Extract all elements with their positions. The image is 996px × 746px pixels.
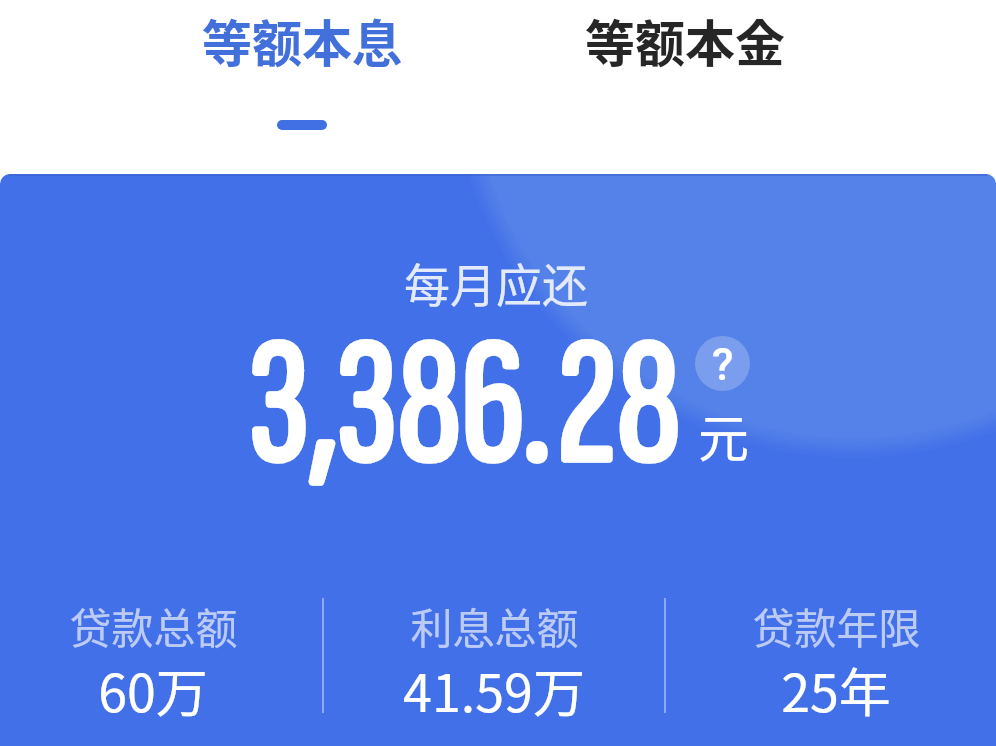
staticText: ? — [712, 339, 734, 391]
staticText: 41.59万 — [403, 652, 585, 727]
staticText: 等额本息 — [202, 4, 402, 76]
button[interactable]: 贷款年限 — [696, 595, 976, 715]
staticText: 利息总额 — [410, 595, 579, 656]
staticText: 元 — [698, 398, 750, 472]
staticText: 25年 — [781, 652, 891, 727]
button[interactable]: 等额本金 — [493, 0, 876, 174]
staticText: 贷款总额 — [69, 595, 238, 656]
staticText: 等额本金 — [585, 4, 785, 76]
staticText: 3,386.28 — [249, 300, 682, 514]
staticText: 每月应还 — [404, 249, 588, 316]
button[interactable]: 利息总额 — [354, 595, 634, 715]
button[interactable]: 每月应还说明 — [695, 336, 750, 391]
staticText: 贷款年限 — [752, 595, 921, 656]
staticText: 60万 — [98, 652, 208, 727]
button[interactable]: 贷款总额 — [13, 595, 293, 715]
button[interactable]: 等额本息 — [110, 0, 493, 174]
